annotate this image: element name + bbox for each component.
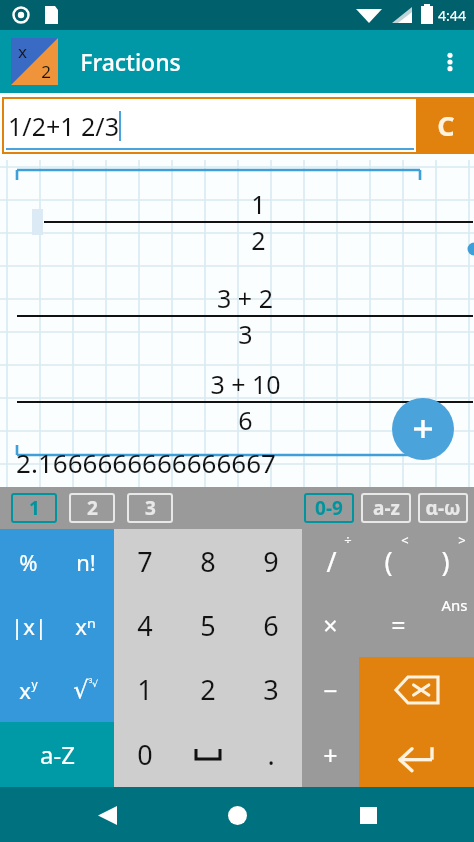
staticText: |x| <box>11 611 47 641</box>
button[interactable]: 3 <box>239 657 302 722</box>
button[interactable]: n! <box>57 529 114 594</box>
staticText: . <box>267 736 275 773</box>
button[interactable]: C <box>418 97 474 154</box>
staticText: 3 + 2 <box>217 281 273 315</box>
button[interactable]: . <box>239 722 302 787</box>
button[interactable]: < <box>360 529 417 593</box>
staticText: a-z <box>373 495 400 521</box>
staticText: 2 <box>87 495 98 521</box>
button[interactable]: Back <box>83 791 131 839</box>
staticText: < <box>401 531 409 549</box>
button[interactable]: a-Z <box>0 722 114 787</box>
button[interactable]: |x| <box>0 594 57 658</box>
staticText: 2.1666666666666667 <box>16 445 276 480</box>
staticText: x <box>18 40 27 63</box>
staticText: + <box>323 738 338 772</box>
staticText: 6 <box>238 403 253 437</box>
staticText: ) <box>441 543 450 580</box>
button[interactable]: 3 <box>127 493 173 523</box>
staticText: 4:44 <box>438 6 466 25</box>
staticText: 8 <box>200 543 216 580</box>
button[interactable]: × <box>302 593 359 657</box>
button[interactable]: x <box>0 658 57 722</box>
staticText: 3 <box>263 671 279 708</box>
staticText: 9 <box>263 543 279 580</box>
button[interactable]: 0 <box>114 722 176 787</box>
staticText: 3 <box>145 495 156 521</box>
staticText: % <box>19 547 38 577</box>
staticText: Ans <box>441 595 468 615</box>
staticText: 6 <box>263 607 279 644</box>
staticText: y <box>31 676 38 692</box>
staticText: 0-9 <box>315 495 343 521</box>
button[interactable]: 7 <box>114 529 176 593</box>
staticText: 3 + 10 <box>210 367 281 401</box>
button[interactable]: % <box>0 529 57 594</box>
button[interactable]: 2 <box>69 493 115 523</box>
button[interactable]: 5 <box>176 593 239 657</box>
button[interactable]: 6 <box>239 593 302 657</box>
staticText: 0 <box>137 736 153 773</box>
button[interactable]: Backspace <box>359 657 474 722</box>
button[interactable]: Recent apps <box>344 791 392 839</box>
button[interactable]: Add <box>392 398 454 460</box>
staticText: n! <box>76 547 96 577</box>
button[interactable]: Home <box>213 791 261 839</box>
button[interactable]: ÷ <box>302 529 360 593</box>
button[interactable]: xⁿ <box>57 594 114 658</box>
staticText: a-Z <box>40 738 75 771</box>
staticText: × <box>323 608 338 642</box>
staticText: √ <box>73 676 89 704</box>
staticText: 3 <box>238 317 253 351</box>
staticText: 2 <box>251 223 266 257</box>
staticText: Fractions <box>80 46 181 77</box>
button[interactable]: α-ω <box>418 493 468 523</box>
button[interactable]: + <box>302 722 359 787</box>
staticText: ÷ <box>344 531 352 549</box>
button[interactable]: 8 <box>176 529 239 593</box>
button[interactable]: Enter <box>359 722 474 787</box>
staticText: 1 <box>251 187 266 221</box>
staticText: ³√ <box>89 677 98 689</box>
staticText: 1/2+1 2/3 <box>8 109 119 143</box>
button[interactable]: 1/2+1 2/3 <box>2 97 418 154</box>
button[interactable]: Ans <box>359 593 474 657</box>
button[interactable]: 1 <box>11 493 57 523</box>
staticText: xⁿ <box>75 611 96 641</box>
staticText: 4 <box>137 607 153 644</box>
staticText: > <box>458 531 466 549</box>
button[interactable]: More options <box>426 38 474 86</box>
staticText: 2 <box>200 671 216 708</box>
button[interactable]: > <box>417 529 474 593</box>
staticText: 7 <box>137 543 153 580</box>
button[interactable]: 4 <box>114 593 176 657</box>
button[interactable]: 9 <box>239 529 302 593</box>
staticText: α-ω <box>425 495 461 521</box>
staticText: ( <box>384 543 393 580</box>
button[interactable]: a-z <box>361 493 411 523</box>
staticText: 5 <box>200 607 216 644</box>
button[interactable]: − <box>302 657 359 722</box>
button[interactable]: Space <box>176 722 239 787</box>
staticText: 2 <box>41 60 51 83</box>
staticText: C <box>437 107 455 144</box>
staticText: = <box>391 608 406 642</box>
button[interactable]: √ <box>57 658 114 722</box>
staticText: − <box>323 673 338 707</box>
button[interactable]: 0-9 <box>304 493 354 523</box>
staticText: 1 <box>137 671 153 708</box>
staticText: x <box>19 675 31 705</box>
staticText: / <box>326 543 337 580</box>
button[interactable]: 2 <box>176 657 239 722</box>
staticText: 1 <box>29 495 40 521</box>
button[interactable]: 1 <box>114 657 176 722</box>
